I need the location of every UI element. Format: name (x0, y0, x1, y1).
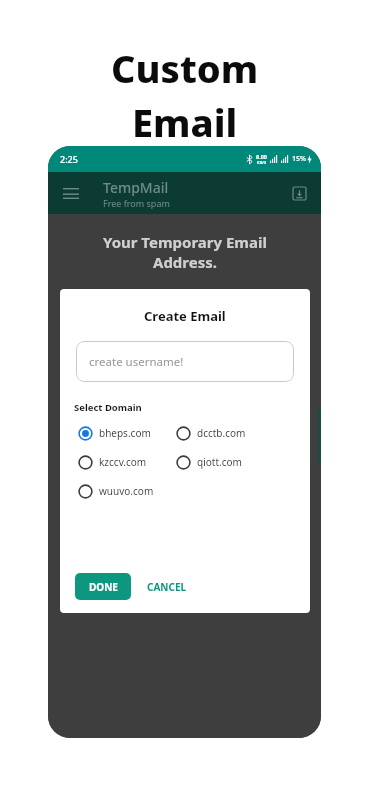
staticText: TempMail (103, 178, 169, 197)
staticText: 2:25 (60, 153, 78, 165)
staticText: Select Domain (74, 401, 142, 414)
staticText: Custom (111, 42, 259, 94)
button[interactable]: CANCEL (143, 573, 191, 600)
staticText: wuuvo.com (99, 484, 154, 498)
staticText: Address. (153, 252, 217, 272)
staticText: KB/S (257, 160, 267, 165)
staticText: CANCEL (147, 580, 187, 594)
button[interactable]: Inbox (287, 181, 311, 205)
staticText: qiott.com (197, 455, 242, 469)
button[interactable]: dcctb.com (176, 421, 246, 445)
staticText: dcctb.com (197, 426, 246, 440)
staticText: 8.00 (256, 153, 267, 160)
button[interactable]: Open navigation menu (58, 180, 84, 206)
staticText: Email (132, 96, 238, 148)
staticText: kzccv.com (99, 455, 147, 469)
button[interactable]: DONE (75, 573, 131, 600)
staticText: Your Temporary Email (103, 232, 267, 252)
staticText: Free from spam (103, 197, 170, 209)
staticText: Create Email (144, 307, 226, 325)
button[interactable]: kzccv.com (78, 450, 176, 474)
staticText: 15% (292, 154, 306, 164)
staticText: DONE (89, 580, 118, 594)
button[interactable]: wuuvo.com (78, 479, 176, 503)
button[interactable]: bheps.com (78, 421, 176, 445)
staticText: create username! (89, 354, 184, 370)
button[interactable]: qiott.com (176, 450, 242, 474)
staticText: bheps.com (99, 426, 151, 440)
button[interactable]: create username! (76, 341, 294, 382)
